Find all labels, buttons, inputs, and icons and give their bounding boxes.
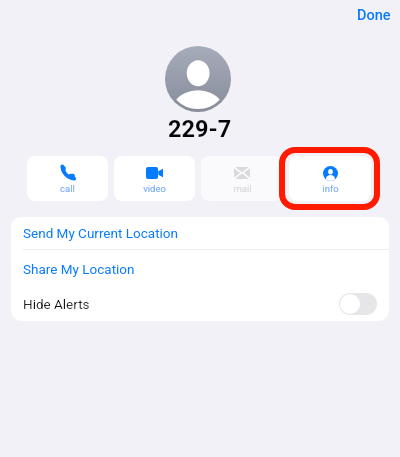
button[interactable]: mail [201, 156, 283, 201]
button[interactable]: call [27, 156, 108, 201]
staticText: video [143, 183, 166, 194]
staticText: mail [233, 183, 252, 194]
button[interactable]: video [114, 156, 195, 201]
staticText: call [60, 183, 75, 194]
button[interactable]: Hide Alerts [11, 287, 389, 321]
button[interactable]: info [289, 156, 371, 201]
button[interactable]: Done [349, 3, 399, 28]
staticText: 229-7 [168, 115, 232, 143]
button[interactable]: Share My Location [11, 250, 389, 287]
staticText: info [322, 183, 339, 194]
button[interactable]: Send My Current Location [11, 217, 389, 249]
staticText: Send My Current Location [23, 225, 178, 241]
staticText: Done [357, 7, 391, 24]
staticText: Share My Location [23, 261, 135, 277]
staticText: Hide Alerts [23, 296, 90, 312]
